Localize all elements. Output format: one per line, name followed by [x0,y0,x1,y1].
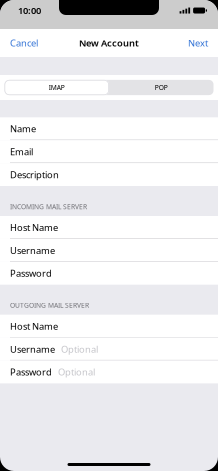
button[interactable]: Username [0,338,218,360]
staticText: Username [10,244,55,257]
staticText: Username [10,343,55,355]
button[interactable]: Description [0,163,218,186]
staticText: Cancel [10,37,38,49]
staticText: POP [155,83,168,92]
staticText: 10:00 [18,4,41,17]
button[interactable]: Next [178,29,218,57]
button[interactable]: Password [0,360,218,383]
staticText: Password [10,267,52,279]
staticText: Optional [61,343,98,355]
button[interactable]: Email [0,140,218,163]
staticText: Host Name [10,320,58,332]
button[interactable]: Cancel [0,29,48,57]
button[interactable]: IMAP [4,80,109,95]
button[interactable]: Username [0,239,218,262]
staticText: New Account [79,37,139,49]
staticText: IMAP [49,83,65,92]
button[interactable]: POP [109,80,213,95]
button[interactable]: Name [0,117,218,140]
button[interactable]: Password [0,262,218,285]
staticText: Password [10,366,52,378]
staticText: Host Name [10,221,58,234]
staticText: Optional [58,366,95,378]
staticText: Description [10,168,59,181]
staticText: Email [10,145,33,158]
staticText: Name [10,123,36,135]
staticText: OUTGOING MAIL SERVER [10,301,89,310]
staticText: INCOMING MAIL SERVER [10,202,87,211]
button[interactable]: Host Name [0,216,218,239]
staticText: Next [188,37,208,49]
button[interactable]: Host Name [0,315,218,338]
